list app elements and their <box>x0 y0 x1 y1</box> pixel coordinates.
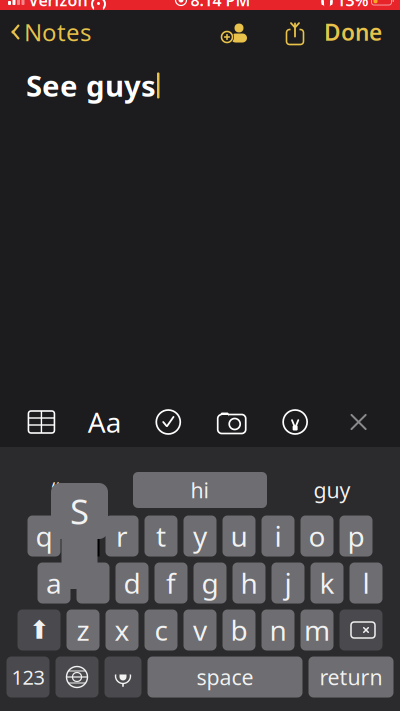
button[interactable]: y <box>183 515 216 556</box>
button[interactable]: b <box>222 609 255 650</box>
staticText: x <box>114 611 129 649</box>
button[interactable]: u <box>222 515 255 556</box>
button[interactable]: Shift <box>17 609 60 650</box>
button[interactable]: Switch Keyboard <box>55 656 98 697</box>
button[interactable]: Format <box>83 405 127 439</box>
button[interactable]: Add People <box>212 12 256 52</box>
button[interactable]: Done <box>314 11 392 53</box>
button[interactable]: f <box>154 562 187 603</box>
button[interactable]: n <box>261 609 294 650</box>
button[interactable]: v <box>183 609 216 650</box>
staticText: a <box>46 564 62 602</box>
staticText: b <box>230 611 247 649</box>
staticText: Done <box>324 17 382 47</box>
staticText: Verizon <box>28 0 87 11</box>
staticText: c <box>154 611 167 649</box>
button[interactable]: hi <box>133 472 267 508</box>
button[interactable]: r <box>105 515 138 556</box>
button[interactable]: t <box>144 515 177 556</box>
staticText: n <box>269 611 286 649</box>
staticText: h <box>240 564 257 602</box>
staticText: j <box>284 564 291 602</box>
staticText: r <box>116 517 128 555</box>
button[interactable]: q <box>27 515 60 556</box>
staticText: z <box>76 611 89 649</box>
button[interactable]: x <box>105 609 138 650</box>
staticText: p <box>347 517 364 555</box>
button[interactable]: m <box>300 609 333 650</box>
staticText: guy <box>313 476 350 504</box>
staticText: q <box>35 517 52 555</box>
button[interactable]: “gu <box>3 470 133 510</box>
staticText: o <box>308 517 325 555</box>
button[interactable]: c <box>144 609 177 650</box>
staticText: l <box>362 564 369 602</box>
button[interactable]: k <box>310 562 343 603</box>
button[interactable]: h <box>232 562 265 603</box>
staticText: return <box>319 663 382 691</box>
button[interactable]: Table <box>19 405 63 439</box>
button[interactable]: d <box>115 562 148 603</box>
staticText: d <box>123 564 140 602</box>
staticText: hi <box>190 476 209 504</box>
staticText: t <box>156 517 166 555</box>
button[interactable]: p <box>339 515 372 556</box>
button[interactable]: space <box>147 656 302 697</box>
button[interactable]: Markup <box>273 405 317 439</box>
staticText: See guys <box>26 66 156 105</box>
button[interactable]: Checklist <box>146 405 190 439</box>
button[interactable]: i <box>261 515 294 556</box>
staticText: k <box>319 564 334 602</box>
staticText: space <box>196 663 253 691</box>
staticText: v <box>193 611 207 649</box>
button[interactable]: o <box>300 515 333 556</box>
button[interactable]: Notes <box>0 10 91 54</box>
staticText: u <box>230 517 247 555</box>
staticText: 13% <box>336 0 368 11</box>
button[interactable]: j <box>271 562 304 603</box>
button[interactable]: z <box>66 609 99 650</box>
button[interactable]: guy <box>267 470 397 510</box>
button[interactable]: Share <box>276 12 314 52</box>
button[interactable]: Close <box>337 405 381 439</box>
button[interactable]: a <box>37 562 70 603</box>
staticText: Aa <box>88 403 122 441</box>
staticText: m <box>304 611 330 649</box>
staticText: S <box>70 488 89 534</box>
staticText: ⬆ <box>28 616 49 644</box>
button[interactable]: g <box>193 562 226 603</box>
staticText: Notes <box>24 16 91 48</box>
staticText: 123 <box>11 664 44 690</box>
staticText: f <box>166 564 176 602</box>
button[interactable]: Camera <box>210 405 254 439</box>
button[interactable]: l <box>349 562 382 603</box>
button[interactable]: Dictate <box>104 656 141 697</box>
staticText: y <box>193 517 207 555</box>
button[interactable]: 123 <box>6 656 49 697</box>
staticText: 8:14 PM <box>190 0 250 11</box>
button[interactable]: return <box>308 656 393 697</box>
staticText: i <box>274 517 281 555</box>
staticText: “gu <box>51 476 84 504</box>
staticText: g <box>201 564 218 602</box>
button[interactable]: Delete <box>339 609 382 650</box>
